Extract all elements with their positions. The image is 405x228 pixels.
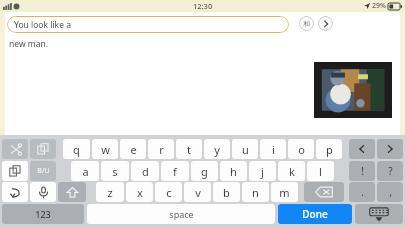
button[interactable]: Paste [2, 161, 28, 181]
button[interactable]: v [184, 182, 211, 202]
button[interactable]: m [271, 182, 298, 202]
button[interactable]: g [191, 161, 218, 181]
button[interactable]: You look like a [7, 16, 289, 33]
staticText: Done [302, 207, 328, 221]
staticText: x [137, 185, 143, 200]
button[interactable]: Undo [2, 182, 28, 202]
button[interactable]: Backspace [304, 182, 344, 202]
staticText: new man. [9, 38, 49, 50]
staticText: space [169, 208, 194, 220]
button[interactable]: y [204, 139, 230, 159]
button[interactable]: B/U [30, 161, 56, 181]
button[interactable]: o [288, 139, 314, 159]
button[interactable]: Copy [30, 139, 56, 159]
button[interactable]: Previous [349, 139, 375, 159]
staticText: c [166, 185, 172, 200]
button[interactable]: Next [377, 139, 403, 159]
button[interactable]: , [377, 182, 403, 202]
button[interactable]: z [96, 182, 124, 202]
button[interactable]: h [220, 161, 247, 181]
staticText: i [272, 142, 275, 157]
staticText: y [214, 142, 220, 157]
staticText: w [101, 142, 110, 157]
staticText: , [389, 185, 392, 199]
staticText: f [173, 164, 177, 179]
staticText: d [142, 164, 149, 179]
button[interactable]: i [260, 139, 286, 159]
button[interactable]: ? [377, 161, 403, 181]
staticText: You look like a [14, 19, 71, 31]
staticText: ? [388, 164, 393, 178]
staticText: B/U [37, 166, 50, 176]
button[interactable]: ! [349, 161, 375, 181]
button[interactable]: Cut [2, 139, 28, 159]
button[interactable]: j [249, 161, 276, 181]
staticText: p [326, 142, 333, 157]
button[interactable]: w [92, 139, 118, 159]
staticText: m [279, 185, 290, 200]
button[interactable]: space [87, 204, 275, 224]
button[interactable]: p [316, 139, 342, 159]
button[interactable]: t [176, 139, 202, 159]
button[interactable]: d [131, 161, 159, 181]
staticText: q [73, 142, 80, 157]
button[interactable]: Hide keyboard [355, 204, 403, 224]
staticText: 和 [303, 19, 310, 28]
button[interactable]: Dictate [30, 182, 56, 202]
button[interactable]: a [71, 161, 99, 181]
staticText: h [230, 164, 237, 179]
button[interactable]: r [148, 139, 174, 159]
staticText: v [195, 185, 201, 200]
staticText: 12:30 [193, 1, 213, 11]
staticText: ! [361, 164, 364, 178]
button[interactable]: c [155, 182, 182, 202]
staticText: t [187, 142, 191, 157]
staticText: o [298, 142, 305, 157]
button[interactable] [314, 62, 392, 118]
staticText: e [130, 142, 137, 157]
staticText: n [252, 185, 259, 200]
staticText: 123 [35, 208, 51, 220]
button[interactable]: e [120, 139, 146, 159]
staticText: s [112, 164, 118, 179]
button[interactable]: s [101, 161, 129, 181]
button[interactable]: Done [278, 204, 352, 224]
button[interactable]: k [278, 161, 305, 181]
button[interactable]: Japanese input [299, 16, 314, 31]
staticText: 29% [372, 1, 386, 11]
staticText: a [82, 164, 89, 179]
button[interactable]: f [161, 161, 189, 181]
button[interactable]: Shift [58, 182, 86, 202]
staticText: j [261, 164, 264, 179]
button[interactable]: 123 [2, 204, 84, 224]
staticText: z [107, 185, 113, 200]
staticText: b [223, 185, 230, 200]
button[interactable]: Next [318, 16, 333, 31]
button[interactable]: q [63, 139, 90, 159]
button[interactable]: b [213, 182, 240, 202]
staticText: k [289, 164, 295, 179]
staticText: . [361, 185, 364, 199]
button[interactable]: . [349, 182, 375, 202]
button[interactable]: x [126, 182, 153, 202]
button[interactable]: l [307, 161, 334, 181]
button[interactable]: u [232, 139, 258, 159]
button[interactable]: n [242, 182, 269, 202]
staticText: r [159, 142, 164, 157]
staticText: l [319, 164, 322, 179]
staticText: g [201, 164, 208, 179]
staticText: u [242, 142, 249, 157]
